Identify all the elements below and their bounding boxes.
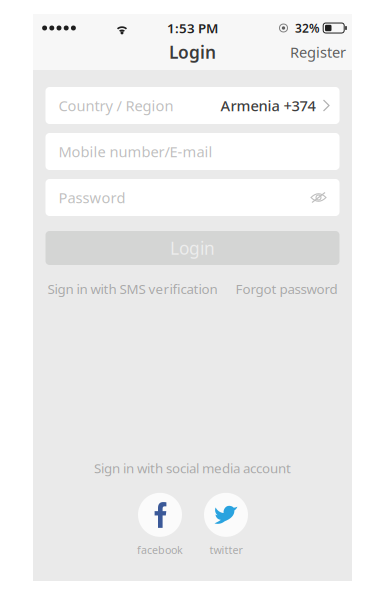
staticText: Password [58, 188, 125, 207]
staticText: Sign in with social media account [94, 459, 291, 477]
staticText: Country / Region [58, 96, 173, 115]
staticText: Armenia +374 [220, 96, 315, 115]
staticText: Login [170, 236, 215, 259]
button[interactable]: Register [278, 35, 352, 69]
staticText: Sign in with SMS verification [47, 280, 217, 298]
button[interactable]: Sign in with twitter [204, 493, 248, 557]
staticText: 1:53 PM [167, 19, 218, 37]
staticText: Mobile number/E-mail [58, 142, 212, 161]
button[interactable]: Sign in with facebook [137, 493, 183, 557]
button[interactable]: Sign in with SMS verification [47, 280, 217, 298]
staticText: Register [290, 42, 346, 62]
button[interactable]: Forgot password [235, 280, 337, 298]
staticText: facebook [137, 543, 183, 557]
staticText: Login [169, 40, 216, 63]
staticText: Forgot password [235, 280, 337, 298]
button[interactable]: Country / Region [45, 87, 339, 124]
button[interactable]: Show password [310, 191, 326, 204]
staticText: twitter [209, 543, 242, 557]
staticText: 32% [295, 20, 320, 36]
